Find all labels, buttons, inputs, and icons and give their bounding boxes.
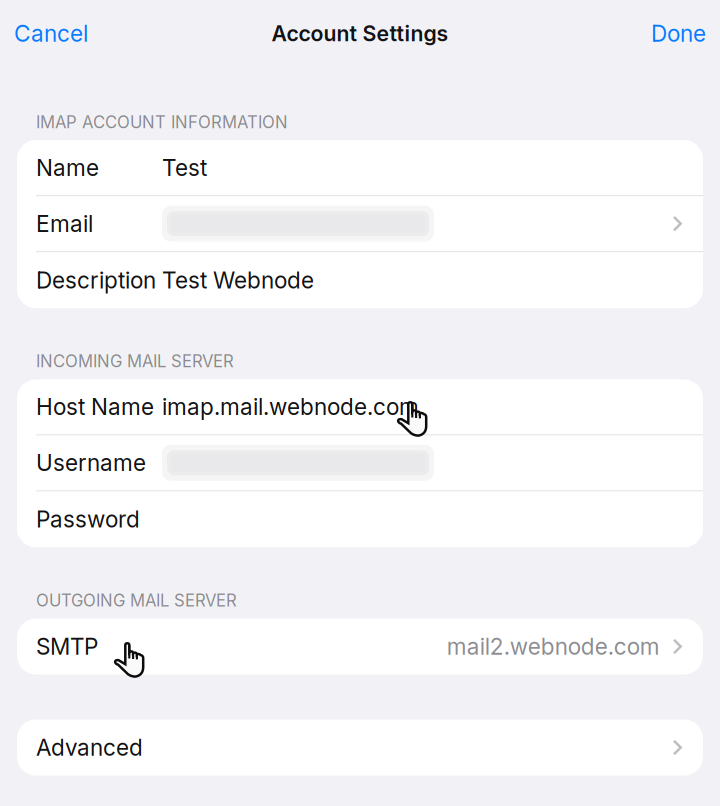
staticText: Host Name <box>36 393 154 420</box>
staticText: INCOMING MAIL SERVER <box>36 351 234 371</box>
button[interactable]: SMTP <box>17 618 703 674</box>
staticText: IMAP ACCOUNT INFORMATION <box>36 112 288 132</box>
staticText: OUTGOING MAIL SERVER <box>36 590 237 610</box>
staticText: imap.mail.webnode.com <box>162 393 419 420</box>
staticText: Name <box>36 154 99 181</box>
staticText: Test Webnode <box>162 266 314 294</box>
staticText: mail2.webnode.com <box>447 633 660 660</box>
button[interactable]: Password <box>17 491 703 547</box>
staticText: Description <box>36 266 156 294</box>
staticText: SMTP <box>36 633 98 660</box>
staticText: Advanced <box>36 734 143 761</box>
button[interactable]: Name <box>17 140 703 196</box>
staticText: Account Settings <box>271 21 448 46</box>
staticText: Done <box>651 20 706 47</box>
button[interactable]: Username <box>17 435 703 491</box>
staticText: Cancel <box>14 20 88 47</box>
button[interactable]: Done <box>651 20 706 47</box>
button[interactable]: Host Name <box>17 379 703 435</box>
button[interactable]: Advanced <box>17 719 703 775</box>
staticText: Password <box>36 506 140 533</box>
button[interactable]: Cancel <box>14 20 88 47</box>
staticText: Test <box>162 154 207 181</box>
button[interactable]: Description <box>17 252 703 308</box>
button[interactable]: Email <box>17 196 703 252</box>
staticText: Email <box>36 210 93 237</box>
staticText: Username <box>36 449 146 476</box>
